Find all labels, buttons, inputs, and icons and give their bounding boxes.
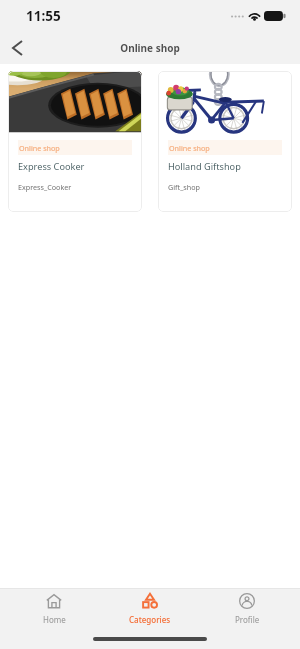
staticText: Express_Cooker <box>18 182 72 192</box>
staticText: Online shop <box>120 41 180 55</box>
staticText: Online shop <box>169 143 210 153</box>
staticText: Holland Giftshop <box>168 160 241 173</box>
staticText: Gift_shop <box>168 182 200 192</box>
staticText: Home <box>43 614 66 625</box>
staticText: Online shop <box>19 143 60 153</box>
staticText: 11:55 <box>26 7 61 25</box>
button[interactable]: Profile <box>204 593 290 625</box>
button[interactable]: Back <box>0 32 34 64</box>
button[interactable]: Online shop <box>158 71 292 212</box>
button[interactable]: Home <box>11 593 97 625</box>
button[interactable]: Categories <box>107 593 193 625</box>
staticText: Profile <box>235 614 260 625</box>
button[interactable]: Online shop <box>8 71 142 212</box>
staticText: Categories <box>129 614 171 625</box>
staticText: Express Cooker <box>18 160 85 173</box>
